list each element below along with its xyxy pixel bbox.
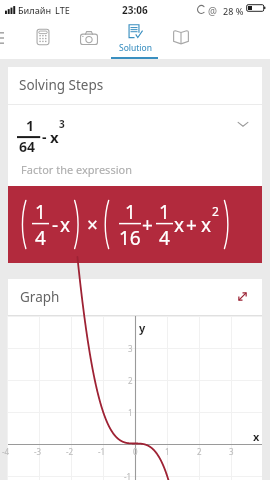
staticText: Solving Steps [19,76,104,94]
button[interactable]: -4 [8,316,262,480]
staticText: 3 [229,446,234,457]
staticText: - [42,127,47,146]
button[interactable]: Menu [0,20,20,59]
staticText: x [201,212,212,238]
staticText: x [60,212,71,238]
staticText: -2 [66,446,74,457]
staticText: 3 [59,117,65,131]
staticText: 2 [197,446,202,457]
staticText: 1 [159,199,170,225]
button[interactable]: Calculator [20,20,66,59]
staticText: 1 [125,199,136,225]
button[interactable]: 1 [8,105,262,186]
staticText: 2 [212,203,219,219]
staticText: + [186,212,197,238]
staticText: -3 [34,446,42,457]
staticText: Graph [20,288,60,306]
staticText: 4 [35,225,46,251]
staticText: 64 [19,137,36,156]
staticText: x [253,429,260,444]
staticText: 0 [133,446,138,457]
staticText: 2 [128,375,133,386]
staticText: Билайн [18,4,52,16]
button[interactable]: Solution [112,20,158,59]
staticText: Factor the expression [21,162,132,177]
staticText: LTE [55,4,70,16]
staticText: -1 [98,446,106,457]
other: Expand step [236,117,250,131]
staticText: 1 [128,407,133,418]
staticText: -4 [2,446,10,457]
staticText: × [87,212,98,238]
button[interactable]: Expand graph [230,284,254,308]
button[interactable]: Dictionary [158,20,204,59]
staticText: -1 [124,471,132,480]
staticText: @ [208,4,217,18]
staticText: x [50,127,59,147]
staticText: 23:06 [122,3,148,17]
staticText: 1 [165,446,170,457]
staticText: y [139,320,146,335]
staticText: 1 [26,116,35,135]
staticText: 16 [119,225,141,251]
staticText: + [142,212,153,238]
staticText: Solution [119,42,152,54]
staticText: x [174,212,185,238]
staticText: 1 [35,199,46,225]
staticText: - [52,212,59,238]
button[interactable]: Camera [66,20,112,59]
staticText: 3 [128,343,133,354]
staticText: 28 % [223,5,244,17]
staticText: 4 [159,225,170,251]
